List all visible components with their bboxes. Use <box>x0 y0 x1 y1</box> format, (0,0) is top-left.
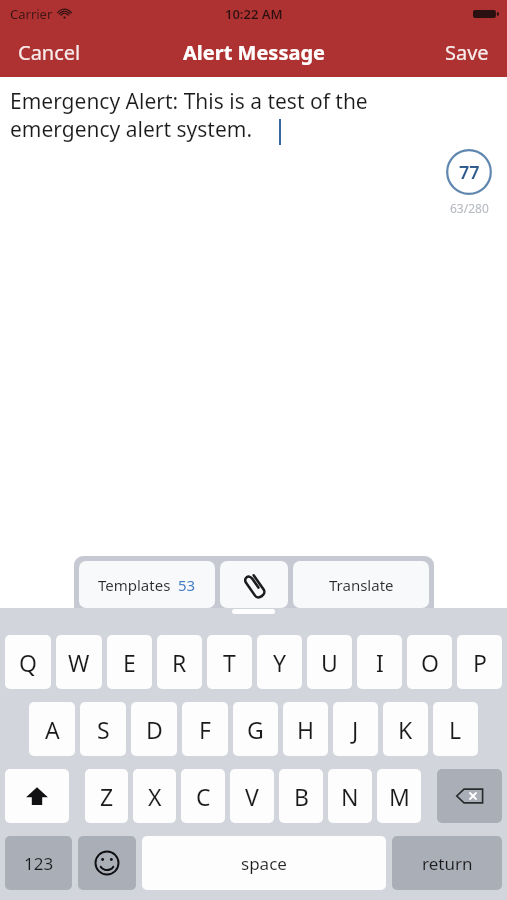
staticText: Q <box>19 647 37 678</box>
button[interactable]: Q <box>5 635 51 689</box>
staticText: 123 <box>24 852 54 875</box>
button[interactable]: V <box>230 769 274 823</box>
staticText: G <box>247 714 264 745</box>
button[interactable]: H <box>283 702 328 756</box>
button[interactable]: O <box>407 635 452 689</box>
button[interactable]: T <box>207 635 252 689</box>
staticText: Carrier <box>10 5 53 23</box>
staticText: Alert Message <box>183 39 325 66</box>
staticText: O <box>421 647 439 678</box>
button[interactable]: F <box>182 702 228 756</box>
staticText: T <box>223 647 236 678</box>
staticText: W <box>68 647 90 678</box>
staticText: V <box>245 781 259 812</box>
staticText: R <box>172 647 187 678</box>
button[interactable]: Z <box>85 769 128 823</box>
button[interactable]: U <box>307 635 352 689</box>
button[interactable]: W <box>56 635 102 689</box>
staticText: Templates <box>98 575 171 595</box>
staticText: E <box>123 647 136 678</box>
button[interactable]: B <box>279 769 323 823</box>
button[interactable]: Backspace <box>437 769 502 823</box>
button[interactable]: M <box>377 769 421 823</box>
staticText: 10:22 AM <box>225 5 283 23</box>
staticText: return <box>422 852 473 875</box>
staticText: Save <box>445 39 489 66</box>
staticText: Translate <box>329 575 394 595</box>
staticText: F <box>199 714 211 745</box>
button[interactable]: 123 <box>5 836 72 890</box>
button[interactable]: space <box>142 836 386 890</box>
button[interactable]: Cancel <box>0 29 99 76</box>
staticText: U <box>321 647 338 678</box>
staticText: I <box>376 647 384 678</box>
staticText: 63/280 <box>450 200 489 216</box>
button[interactable]: Emoji <box>78 836 136 890</box>
staticText: A <box>45 714 60 745</box>
button[interactable]: E <box>107 635 152 689</box>
staticText: H <box>297 714 315 745</box>
staticText: C <box>196 781 211 812</box>
staticText: X <box>148 781 162 812</box>
staticText: 77 <box>459 160 480 185</box>
staticText: Z <box>100 781 114 812</box>
staticText: S <box>97 714 110 745</box>
button[interactable]: R <box>157 635 202 689</box>
staticText: J <box>352 714 359 745</box>
staticText: M <box>389 781 410 812</box>
button[interactable]: J <box>333 702 378 756</box>
button[interactable]: C <box>181 769 225 823</box>
staticText: P <box>473 647 487 678</box>
staticText: N <box>341 781 359 812</box>
staticText: D <box>146 714 163 745</box>
button[interactable]: Translate <box>293 561 429 608</box>
button[interactable]: P <box>457 635 502 689</box>
button[interactable]: X <box>133 769 176 823</box>
button[interactable]: N <box>328 769 372 823</box>
staticText: 53 <box>178 575 196 595</box>
staticText: K <box>398 714 413 745</box>
button[interactable]: I <box>357 635 402 689</box>
button[interactable]: Save <box>427 29 507 76</box>
button[interactable]: K <box>383 702 428 756</box>
button[interactable]: D <box>131 702 177 756</box>
staticText: Cancel <box>18 39 81 66</box>
button[interactable]: return <box>392 836 502 890</box>
button[interactable]: Attach file <box>220 561 288 608</box>
button[interactable]: G <box>233 702 278 756</box>
button[interactable]: Y <box>257 635 302 689</box>
button[interactable]: L <box>433 702 478 756</box>
staticText: B <box>294 781 309 812</box>
staticText: Y <box>273 647 287 678</box>
staticText: Emergency Alert: This is a test of the e… <box>10 87 368 143</box>
staticText: L <box>449 714 462 745</box>
staticText: space <box>241 852 287 875</box>
button[interactable]: Templates <box>79 561 215 608</box>
button[interactable]: S <box>80 702 126 756</box>
button[interactable]: A <box>29 702 75 756</box>
button[interactable]: Shift <box>5 769 69 823</box>
